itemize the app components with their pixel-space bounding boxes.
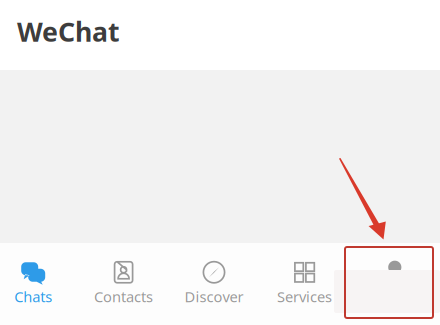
staticText: Contacts [94, 287, 153, 306]
staticText: WeChat [17, 14, 120, 49]
staticText: Services [277, 287, 332, 306]
button[interactable]: Me [350, 250, 440, 318]
button[interactable]: Chats [0, 250, 78, 318]
button[interactable]: Contacts [78, 250, 169, 318]
staticText: Discover [184, 287, 243, 306]
staticText: Chats [14, 287, 52, 306]
button[interactable]: Discover [169, 250, 259, 318]
button[interactable]: Services [259, 250, 350, 318]
